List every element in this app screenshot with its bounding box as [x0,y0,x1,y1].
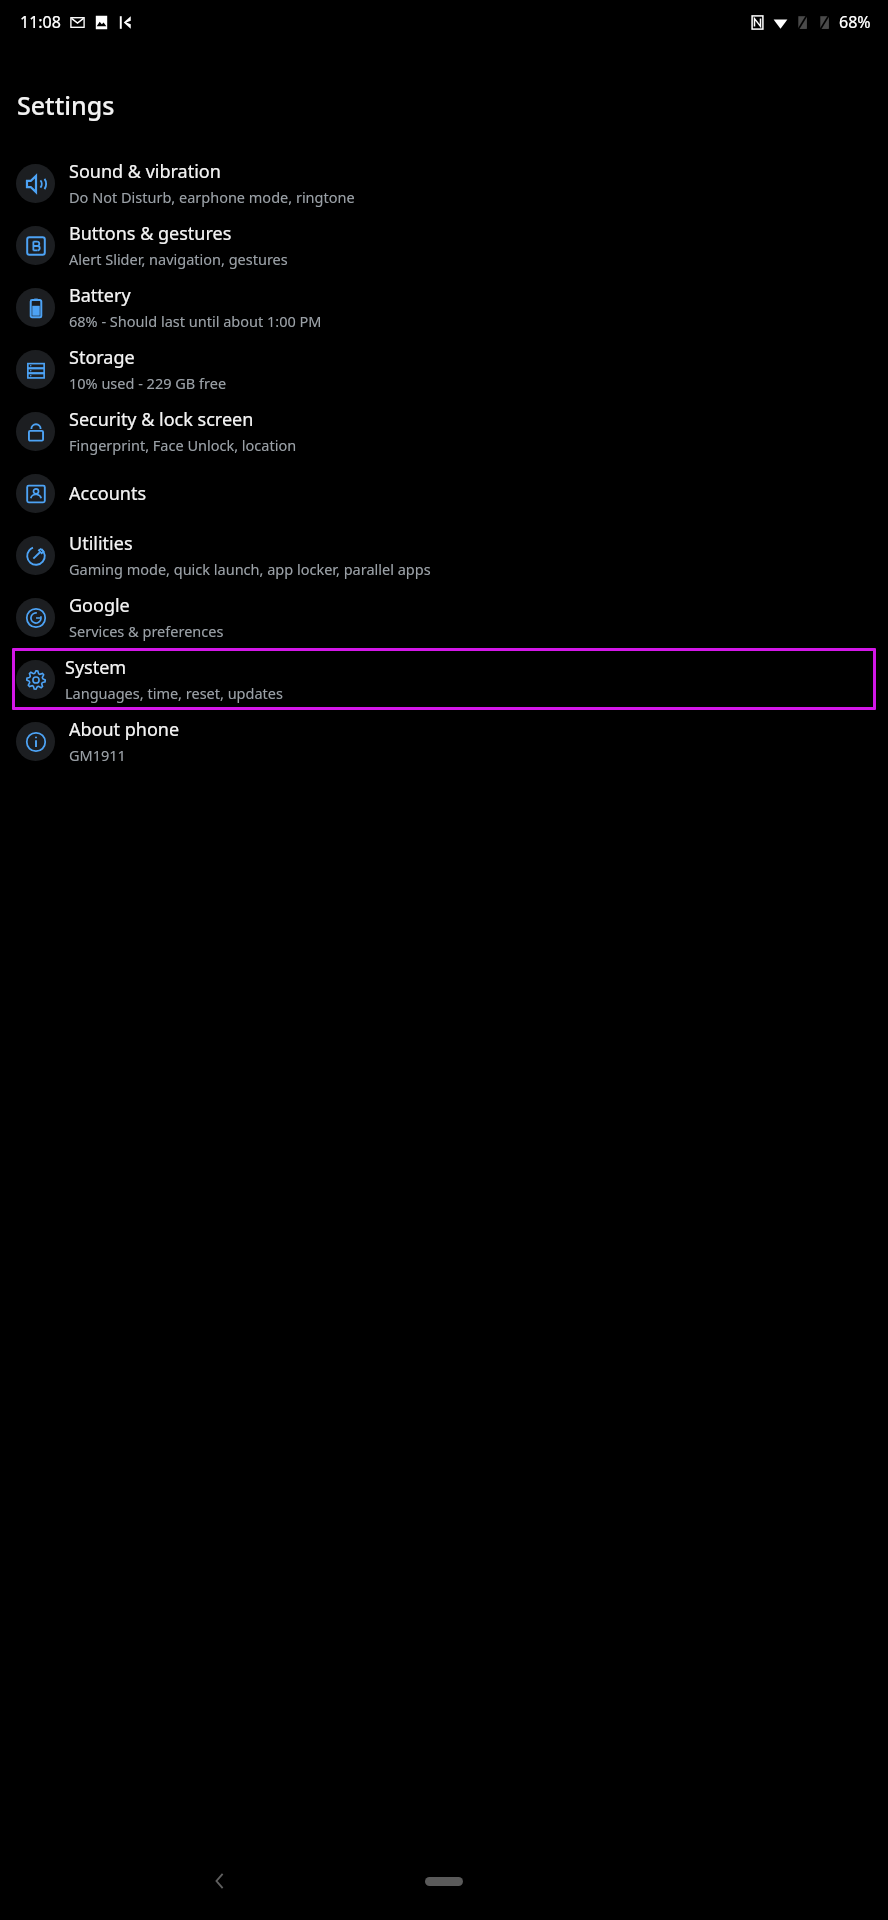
button[interactable]: Sound & vibration [8,152,880,214]
staticText: Google [69,593,130,618]
button[interactable]: Battery [8,276,880,338]
staticText: 10% used - 229 GB free [69,373,227,393]
button[interactable]: Buttons & gestures [8,214,880,276]
staticText: Gaming mode, quick launch, app locker, p… [69,559,431,579]
staticText: Storage [69,345,135,370]
staticText: Utilities [69,531,133,556]
button[interactable]: Back [200,1861,240,1901]
staticText: Languages, time, reset, updates [65,683,283,703]
staticText: Security & lock screen [69,407,254,432]
staticText: Do Not Disturb, earphone mode, ringtone [69,187,355,207]
button[interactable]: About phone [8,710,880,772]
button[interactable]: Security & lock screen [8,400,880,462]
button[interactable]: Accounts [8,462,880,524]
staticText: Services & preferences [69,621,224,641]
staticText: Buttons & gestures [69,221,232,246]
button[interactable]: Google [8,586,880,648]
button[interactable]: Home [425,1877,463,1886]
button[interactable]: System [12,648,876,710]
staticText: About phone [69,717,180,742]
staticText: 68% [839,11,871,33]
staticText: Alert Slider, navigation, gestures [69,249,288,269]
staticText: Accounts [69,481,147,506]
button[interactable]: Utilities [8,524,880,586]
staticText: 68% - Should last until about 1:00 PM [69,311,322,331]
button[interactable]: Storage [8,338,880,400]
staticText: 11:08 [20,11,61,33]
staticText: Fingerprint, Face Unlock, location [69,435,297,455]
staticText: Settings [17,88,115,122]
staticText: GM1911 [69,745,126,765]
staticText: Sound & vibration [69,159,221,184]
staticText: System [65,655,127,680]
staticText: Battery [69,283,131,308]
